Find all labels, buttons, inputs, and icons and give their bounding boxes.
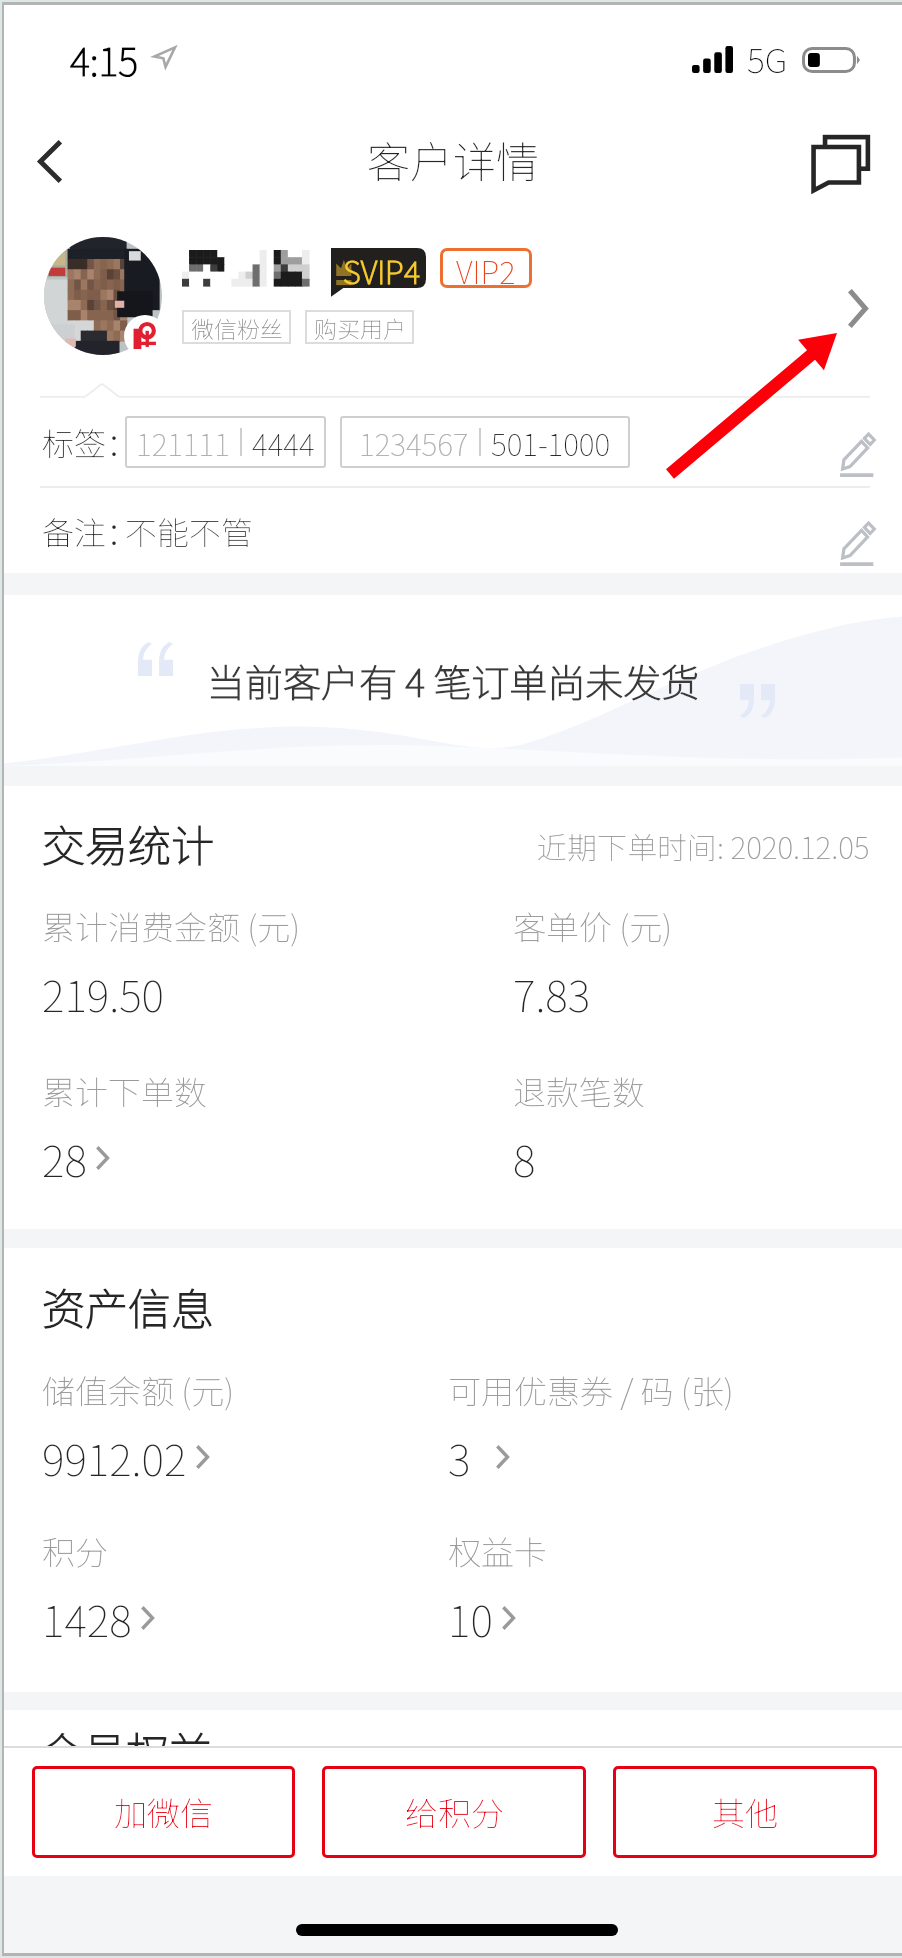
staticText: 3 xyxy=(448,1426,471,1488)
staticText: 10 xyxy=(448,1587,493,1649)
staticText: 1234567 xyxy=(359,421,469,464)
staticText: 备注： xyxy=(42,508,125,554)
button[interactable]: 购买用户 xyxy=(305,310,414,344)
button[interactable]: Edit xyxy=(824,414,880,470)
staticText: 近期下单时间: 2020.12.05 xyxy=(537,824,870,867)
staticText: 给积分 xyxy=(405,1788,504,1836)
staticText: 标签： xyxy=(42,419,125,465)
staticText: 1428 xyxy=(42,1587,132,1649)
button[interactable]: 其他 xyxy=(613,1766,877,1858)
staticText: 219.50 xyxy=(42,962,164,1024)
staticText: 28 xyxy=(42,1127,87,1189)
button[interactable]: SVIP4 xyxy=(4,197,902,395)
staticText: 累计消费金额 (元) xyxy=(42,902,300,950)
staticText: 购买用户 xyxy=(314,311,406,344)
staticText: 其他 xyxy=(712,1788,778,1836)
button[interactable]: Messages xyxy=(801,123,881,203)
staticText: 5G xyxy=(747,34,788,83)
staticText: 退款笔数 xyxy=(513,1067,645,1115)
button[interactable]: Back xyxy=(7,119,91,203)
button[interactable]: 退款笔数 xyxy=(513,1067,870,1189)
staticText: 8 xyxy=(513,1127,536,1189)
staticText: 交易统计 xyxy=(42,812,214,874)
staticText: 4:15 xyxy=(70,32,139,87)
staticText: 9912.02 xyxy=(42,1426,187,1488)
staticText: 客单价 (元) xyxy=(513,902,672,950)
staticText: 微信粉丝 xyxy=(191,311,283,344)
staticText: 当前客户有 4 笔订单尚未发货 xyxy=(207,653,700,708)
staticText: 累计下单数 xyxy=(42,1067,207,1115)
staticText: 7.83 xyxy=(513,962,591,1024)
staticText: 权益卡 xyxy=(448,1527,547,1575)
staticText: 加微信 xyxy=(114,1788,213,1836)
button[interactable]: 客单价 (元) xyxy=(513,902,870,1024)
staticText: 客户详情 xyxy=(367,128,539,190)
staticText: SVIP4 xyxy=(343,248,420,288)
button[interactable]: Edit xyxy=(824,503,880,559)
button[interactable]: 给积分 xyxy=(322,1766,586,1858)
staticText: 资产信息 xyxy=(42,1275,214,1337)
button[interactable]: 权益卡 xyxy=(448,1527,870,1649)
button[interactable]: 微信粉丝 xyxy=(182,310,291,344)
button[interactable]: 储值余额 (元) xyxy=(42,1366,448,1488)
button[interactable]: 积分 xyxy=(42,1527,448,1649)
staticText: 4444 xyxy=(252,421,315,464)
staticText: VIP2 xyxy=(456,248,516,288)
staticText: 会员权益 xyxy=(40,1719,212,1781)
button[interactable]: 加微信 xyxy=(32,1766,295,1858)
button[interactable]: 累计下单数 xyxy=(42,1067,513,1189)
button[interactable]: 累计消费金额 (元) xyxy=(42,902,513,1024)
staticText: 可用优惠券 / 码 (张) xyxy=(448,1366,734,1414)
staticText: 积分 xyxy=(42,1527,108,1575)
staticText: 储值余额 (元) xyxy=(42,1366,234,1414)
staticText: 121111 xyxy=(136,421,230,464)
staticText: 501-1000 xyxy=(491,421,611,464)
button[interactable]: 可用优惠券 / 码 (张) xyxy=(448,1366,870,1488)
staticText: 不能不管 xyxy=(125,508,254,554)
